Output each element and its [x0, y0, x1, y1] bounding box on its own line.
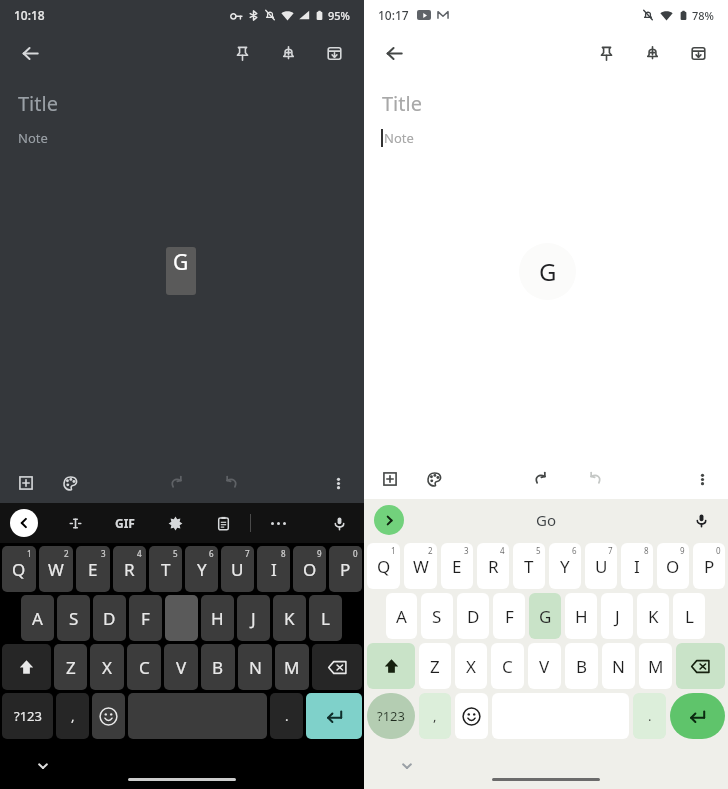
- button[interactable]: Redo: [577, 461, 613, 497]
- button[interactable]: X: [455, 643, 487, 689]
- button[interactable]: [670, 693, 725, 739]
- button[interactable]: P: [329, 546, 362, 592]
- button[interactable]: Expand toolbar: [10, 509, 38, 537]
- button[interactable]: T: [149, 546, 182, 592]
- button[interactable]: [676, 643, 725, 689]
- button[interactable]: [312, 644, 362, 690]
- button[interactable]: G: [529, 593, 561, 639]
- button[interactable]: ?123: [2, 693, 53, 739]
- button[interactable]: J: [601, 593, 633, 639]
- button[interactable]: Back: [374, 33, 414, 73]
- button[interactable]: Archive: [314, 33, 354, 73]
- button[interactable]: Reminder: [632, 33, 672, 73]
- button[interactable]: Undo: [159, 465, 195, 501]
- button[interactable]: [306, 693, 362, 739]
- button[interactable]: B: [565, 643, 598, 689]
- button[interactable]: L: [309, 595, 342, 641]
- button[interactable]: U: [585, 543, 617, 589]
- button[interactable]: W: [39, 546, 73, 592]
- button[interactable]: D: [457, 593, 489, 639]
- button[interactable]: D: [93, 595, 126, 641]
- button[interactable]: N: [602, 643, 635, 689]
- button[interactable]: ?123: [367, 693, 415, 739]
- button[interactable]: A: [386, 593, 417, 639]
- button[interactable]: K: [273, 595, 306, 641]
- button[interactable]: N: [238, 644, 272, 690]
- button[interactable]: I: [257, 546, 290, 592]
- button[interactable]: Hide keyboard: [30, 753, 56, 779]
- button[interactable]: Hide keyboard: [394, 753, 420, 779]
- button[interactable]: Z: [54, 644, 87, 690]
- button[interactable]: [367, 643, 415, 689]
- button[interactable]: Add: [8, 465, 44, 501]
- button[interactable]: Z: [419, 643, 451, 689]
- button[interactable]: More options: [684, 461, 720, 497]
- button[interactable]: Voice input: [324, 508, 354, 538]
- button[interactable]: More options: [320, 465, 356, 501]
- button[interactable]: L: [673, 593, 705, 639]
- button[interactable]: Undo: [523, 461, 559, 497]
- button[interactable]: C: [127, 644, 161, 690]
- button[interactable]: .: [633, 693, 666, 739]
- button[interactable]: .: [270, 693, 303, 739]
- button[interactable]: Settings: [160, 508, 190, 538]
- staticText: 7: [245, 548, 250, 559]
- button[interactable]: Color palette: [416, 461, 452, 497]
- button[interactable]: F: [129, 595, 162, 641]
- button[interactable]: ,: [419, 693, 451, 739]
- button[interactable]: Y: [549, 543, 581, 589]
- button[interactable]: F: [493, 593, 525, 639]
- button[interactable]: V: [528, 643, 561, 689]
- button[interactable]: R: [477, 543, 509, 589]
- button[interactable]: Pin: [222, 33, 262, 73]
- button[interactable]: H: [565, 593, 597, 639]
- button[interactable]: [455, 693, 488, 739]
- button[interactable]: M: [639, 643, 672, 689]
- button[interactable]: S: [57, 595, 90, 641]
- button[interactable]: Q: [367, 543, 400, 589]
- button[interactable]: Text editing: [60, 508, 90, 538]
- button[interactable]: E: [76, 546, 110, 592]
- staticText: 0: [353, 548, 358, 559]
- button[interactable]: Reminder: [268, 33, 308, 73]
- button[interactable]: P: [693, 543, 725, 589]
- button[interactable]: [2, 644, 51, 690]
- button[interactable]: O: [657, 543, 689, 589]
- button[interactable]: A: [21, 595, 54, 641]
- button[interactable]: [92, 693, 125, 739]
- button[interactable]: O: [293, 546, 326, 592]
- button[interactable]: ,: [56, 693, 89, 739]
- button[interactable]: Expand toolbar: [374, 505, 404, 535]
- button[interactable]: Pin: [586, 33, 626, 73]
- button[interactable]: Redo: [213, 465, 249, 501]
- button[interactable]: U: [221, 546, 254, 592]
- button[interactable]: E: [441, 543, 473, 589]
- button[interactable]: V: [164, 644, 198, 690]
- button[interactable]: W: [404, 543, 437, 589]
- button[interactable]: H: [201, 595, 234, 641]
- button[interactable]: B: [201, 644, 235, 690]
- button[interactable]: C: [491, 643, 524, 689]
- button[interactable]: Color palette: [52, 465, 88, 501]
- button[interactable]: Add: [372, 461, 408, 497]
- button[interactable]: M: [275, 644, 309, 690]
- button[interactable]: Clipboard: [208, 508, 238, 538]
- button[interactable]: R: [113, 546, 146, 592]
- button[interactable]: J: [237, 595, 270, 641]
- button[interactable]: Y: [185, 546, 218, 592]
- button[interactable]: Back: [10, 33, 50, 73]
- button[interactable]: K: [637, 593, 669, 639]
- button[interactable]: GIF: [108, 506, 142, 540]
- button[interactable]: T: [513, 543, 545, 589]
- button[interactable]: More: [263, 508, 293, 538]
- button[interactable]: Q: [2, 546, 36, 592]
- button[interactable]: [128, 693, 267, 739]
- button[interactable]: X: [90, 644, 124, 690]
- button[interactable]: I: [621, 543, 653, 589]
- button[interactable]: S: [421, 593, 453, 639]
- button[interactable]: Archive: [678, 33, 718, 73]
- button[interactable]: Go: [536, 510, 556, 530]
- button[interactable]: Voice input: [686, 505, 716, 535]
- button[interactable]: [165, 595, 198, 641]
